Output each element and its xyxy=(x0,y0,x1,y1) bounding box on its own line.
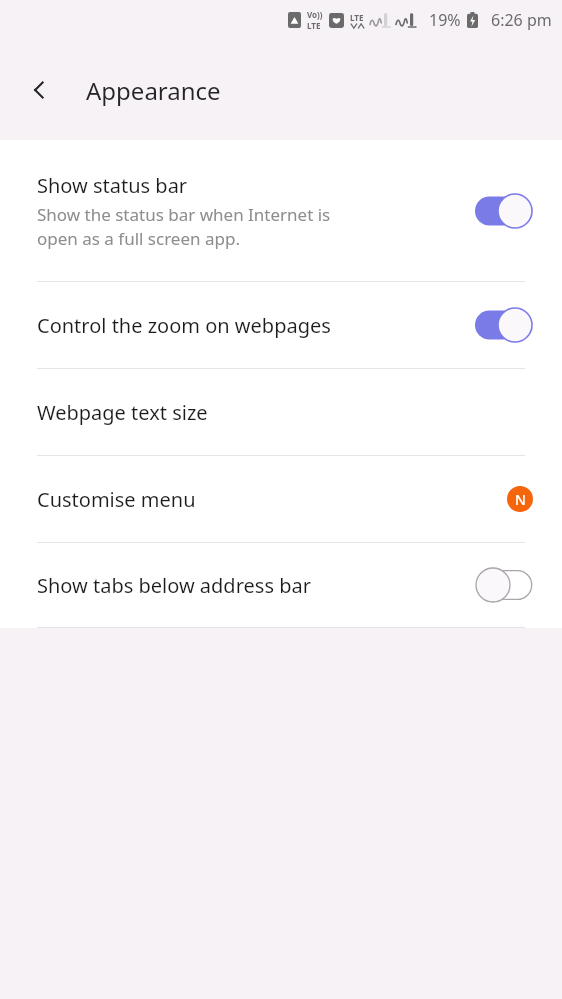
staticText: LTE xyxy=(350,12,364,23)
staticText: N xyxy=(515,490,526,509)
staticText: Control the zoom on webpages xyxy=(37,312,331,339)
staticText: Show status bar xyxy=(37,172,188,199)
staticText: 19% xyxy=(429,9,461,31)
button[interactable]: Customise menu xyxy=(0,456,562,542)
button[interactable]: Back xyxy=(16,66,64,114)
button[interactable]: Show tabs below address bar xyxy=(0,543,562,627)
staticText: Webpage text size xyxy=(37,399,208,426)
button[interactable]: Show status bar xyxy=(0,140,562,281)
staticText: LTE xyxy=(307,20,321,31)
button[interactable]: Toggle, on xyxy=(475,307,533,343)
button[interactable]: Toggle, off xyxy=(475,567,533,603)
button[interactable]: New xyxy=(507,486,533,512)
button[interactable]: Control the zoom on webpages xyxy=(0,282,562,368)
staticText: Show the status bar when Internet is ope… xyxy=(37,203,331,250)
staticText: 6:26 pm xyxy=(491,9,552,31)
staticText: Show tabs below address bar xyxy=(37,572,311,599)
button[interactable]: Webpage text size xyxy=(0,369,562,455)
button[interactable]: Toggle, on xyxy=(475,193,533,229)
staticText: Customise menu xyxy=(37,486,196,513)
staticText: Vo)) xyxy=(307,9,323,20)
staticText: Appearance xyxy=(86,74,221,107)
